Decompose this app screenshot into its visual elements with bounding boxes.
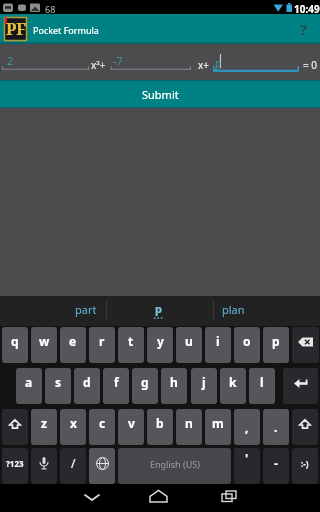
staticText: ' — [245, 450, 249, 466]
button[interactable] — [76, 484, 108, 512]
button[interactable]: s — [45, 368, 71, 404]
staticText: r — [99, 333, 105, 349]
staticText: p — [215, 56, 222, 70]
staticText: / — [71, 455, 76, 471]
staticText: Submit — [142, 87, 179, 102]
staticText: g — [141, 374, 149, 390]
staticText: Pocket Formula — [33, 24, 99, 36]
button[interactable]: n — [176, 409, 202, 445]
button[interactable] — [31, 448, 57, 484]
staticText: -7 — [113, 53, 123, 68]
staticText: h — [170, 374, 178, 390]
button[interactable]: d — [74, 368, 100, 404]
staticText: x²+ — [91, 58, 106, 72]
button[interactable]: , — [234, 409, 260, 445]
button[interactable]: w — [31, 327, 57, 363]
staticText: plan — [222, 302, 245, 317]
staticText: - — [274, 455, 278, 471]
staticText: j — [202, 374, 206, 390]
button[interactable]: :-) — [292, 448, 318, 484]
staticText: , — [245, 419, 249, 435]
button[interactable]: j — [191, 368, 217, 404]
button[interactable]: m — [205, 409, 231, 445]
staticText: l — [260, 374, 264, 390]
button[interactable]: c — [89, 409, 115, 445]
staticText: z — [41, 415, 47, 431]
staticText: 10:49 — [294, 2, 320, 16]
button[interactable]: q — [2, 327, 28, 363]
staticText: x+ — [198, 58, 210, 72]
staticText: k — [229, 374, 237, 390]
button[interactable]: Submit — [0, 80, 320, 108]
staticText: 68 — [45, 3, 56, 15]
staticText: w — [39, 333, 50, 349]
staticText: p — [272, 333, 280, 349]
button[interactable] — [213, 484, 245, 512]
staticText: t — [128, 333, 134, 349]
staticText: ? — [300, 19, 308, 39]
button[interactable]: u — [176, 327, 202, 363]
button[interactable]: . — [263, 409, 289, 445]
staticText: x — [70, 415, 77, 431]
button[interactable] — [292, 409, 318, 445]
staticText: s — [55, 374, 62, 390]
staticText: i — [216, 333, 220, 349]
button[interactable]: f — [103, 368, 129, 404]
button[interactable] — [283, 368, 318, 404]
button[interactable]: k — [220, 368, 246, 404]
button[interactable]: t — [118, 327, 144, 363]
button[interactable]: h — [161, 368, 187, 404]
staticText: o — [243, 333, 251, 349]
button[interactable]: g — [132, 368, 158, 404]
staticText: = 0 — [303, 58, 318, 72]
button[interactable]: x — [60, 409, 86, 445]
staticText: part — [75, 302, 97, 317]
button[interactable]: e — [60, 327, 86, 363]
staticText: c — [99, 415, 106, 431]
staticText: f — [114, 374, 119, 390]
staticText: PF — [6, 18, 27, 40]
button[interactable]: / — [60, 448, 86, 484]
staticText: m — [212, 415, 224, 431]
staticText: e — [69, 333, 77, 349]
button[interactable]: o — [234, 327, 260, 363]
staticText: d — [83, 374, 91, 390]
staticText: p — [155, 301, 162, 316]
staticText: y — [157, 333, 164, 349]
button[interactable]: v — [118, 409, 144, 445]
button[interactable] — [143, 484, 175, 512]
button[interactable]: z — [31, 409, 57, 445]
button[interactable]: p — [263, 327, 289, 363]
button[interactable]: y — [147, 327, 173, 363]
staticText: :-) — [301, 458, 309, 469]
button[interactable] — [292, 327, 319, 363]
button[interactable] — [2, 409, 28, 445]
staticText: n — [185, 415, 193, 431]
button[interactable]: b — [147, 409, 173, 445]
staticText: English (US) — [150, 458, 200, 470]
staticText: 2 — [7, 53, 14, 68]
button[interactable]: i — [205, 327, 231, 363]
button[interactable] — [89, 448, 115, 484]
staticText: q — [11, 333, 19, 349]
button[interactable]: ?123 — [2, 448, 28, 484]
staticText: a — [25, 374, 33, 390]
staticText: ?123 — [6, 458, 24, 469]
button[interactable]: - — [263, 448, 289, 484]
button[interactable]: English (US) — [118, 448, 231, 484]
button[interactable]: a — [16, 368, 42, 404]
staticText: b — [156, 415, 164, 431]
staticText: . — [274, 419, 278, 435]
button[interactable]: ' — [234, 448, 260, 484]
staticText: v — [128, 415, 135, 431]
button[interactable]: l — [249, 368, 275, 404]
button[interactable] — [53, 296, 160, 326]
staticText: u — [185, 333, 193, 349]
button[interactable]: r — [89, 327, 115, 363]
